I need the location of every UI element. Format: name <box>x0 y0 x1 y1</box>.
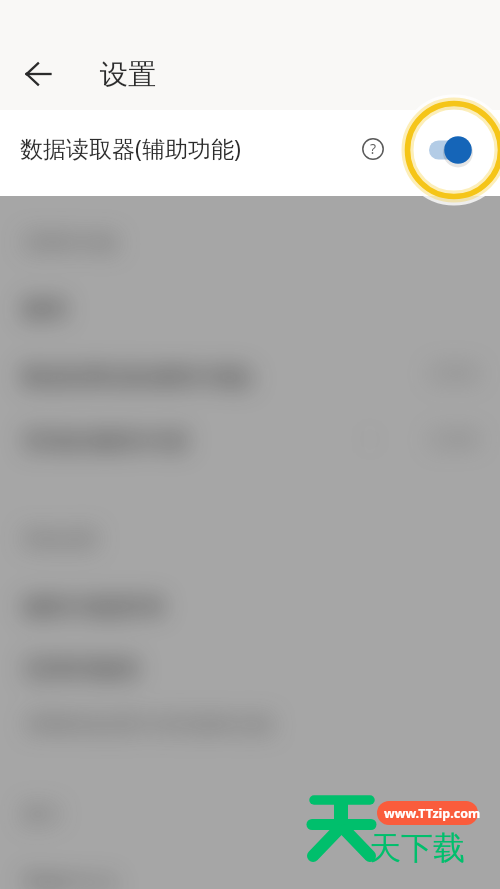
button[interactable]: 数据读取器(辅助功能) 已开启 <box>0 326 500 390</box>
staticText: 数据读取器(辅助功能) <box>22 359 253 392</box>
button[interactable]: Help <box>353 129 393 169</box>
staticText: 设置 <box>100 57 156 92</box>
button[interactable]: 无障碍服务 <box>0 592 500 702</box>
button[interactable]: 安装的服务内容 已关闭 <box>0 390 500 490</box>
staticText: 数据读取器(辅助功能) <box>20 132 241 163</box>
button[interactable]: 服务 <box>0 196 500 326</box>
button[interactable]: Back <box>14 49 64 99</box>
staticText: 无障碍服务 <box>22 654 142 684</box>
staticText: 天下载 <box>369 828 465 868</box>
button[interactable]: 数据读取器开关, 已开启 <box>425 131 487 175</box>
staticText: 安装的服务内容 <box>22 426 190 456</box>
staticText: 辅助功能菜单 <box>22 592 166 622</box>
staticText: 服务 <box>22 294 70 324</box>
button[interactable]: 字体大小 <box>0 702 500 889</box>
button[interactable]: 数据读取器(辅助功能) <box>0 110 500 196</box>
staticText: ? <box>370 139 377 158</box>
staticText: www.TTzip.com <box>384 805 481 822</box>
